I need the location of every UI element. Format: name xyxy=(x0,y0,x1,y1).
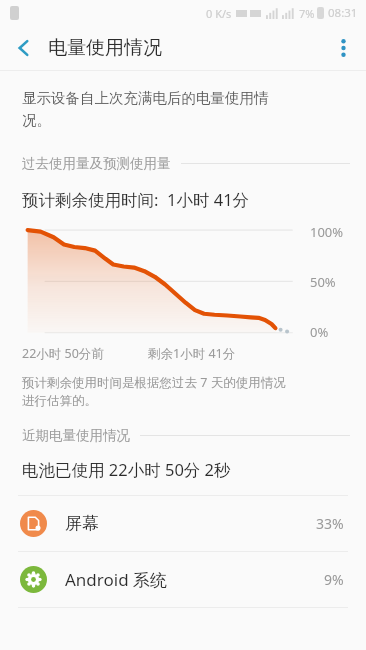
staticText: 9% xyxy=(324,570,344,589)
staticText: 预计剩余使用时间: 1小时 41分 xyxy=(22,188,250,211)
staticText: 电量使用情况 xyxy=(48,36,162,60)
button[interactable]: Back xyxy=(0,26,48,70)
staticText: 08:31 xyxy=(328,5,358,21)
staticText: 0 K/s xyxy=(206,6,232,21)
staticText: 近期电量使用情况 xyxy=(22,427,130,444)
button[interactable]: More options xyxy=(320,26,366,70)
staticText: Android 系统 xyxy=(65,568,168,591)
staticText: 预计剩余使用时间是根据您过去 7 天的使用情况 xyxy=(22,374,286,391)
staticText: 电池已使用 22小时 50分 2秒 xyxy=(22,458,231,481)
staticText: 过去使用量及预测使用量 xyxy=(22,155,171,172)
button[interactable]: 屏幕 xyxy=(0,496,366,551)
staticText: 况。 xyxy=(22,111,51,129)
staticText: 屏幕 xyxy=(65,513,99,534)
staticText: 7% xyxy=(299,6,315,21)
staticText: 33% xyxy=(316,514,344,533)
staticText: 100% xyxy=(310,223,344,241)
staticText: 0% xyxy=(310,323,329,341)
staticText: 22小时 50分前 xyxy=(22,345,104,362)
staticText: 显示设备自上次充满电后的电量使用情 xyxy=(22,89,269,107)
staticText: 50% xyxy=(310,273,336,291)
staticText: 剩余1小时 41分 xyxy=(148,345,236,362)
button[interactable]: Android 系统 xyxy=(0,552,366,607)
staticText: 进行估算的。 xyxy=(22,393,97,409)
